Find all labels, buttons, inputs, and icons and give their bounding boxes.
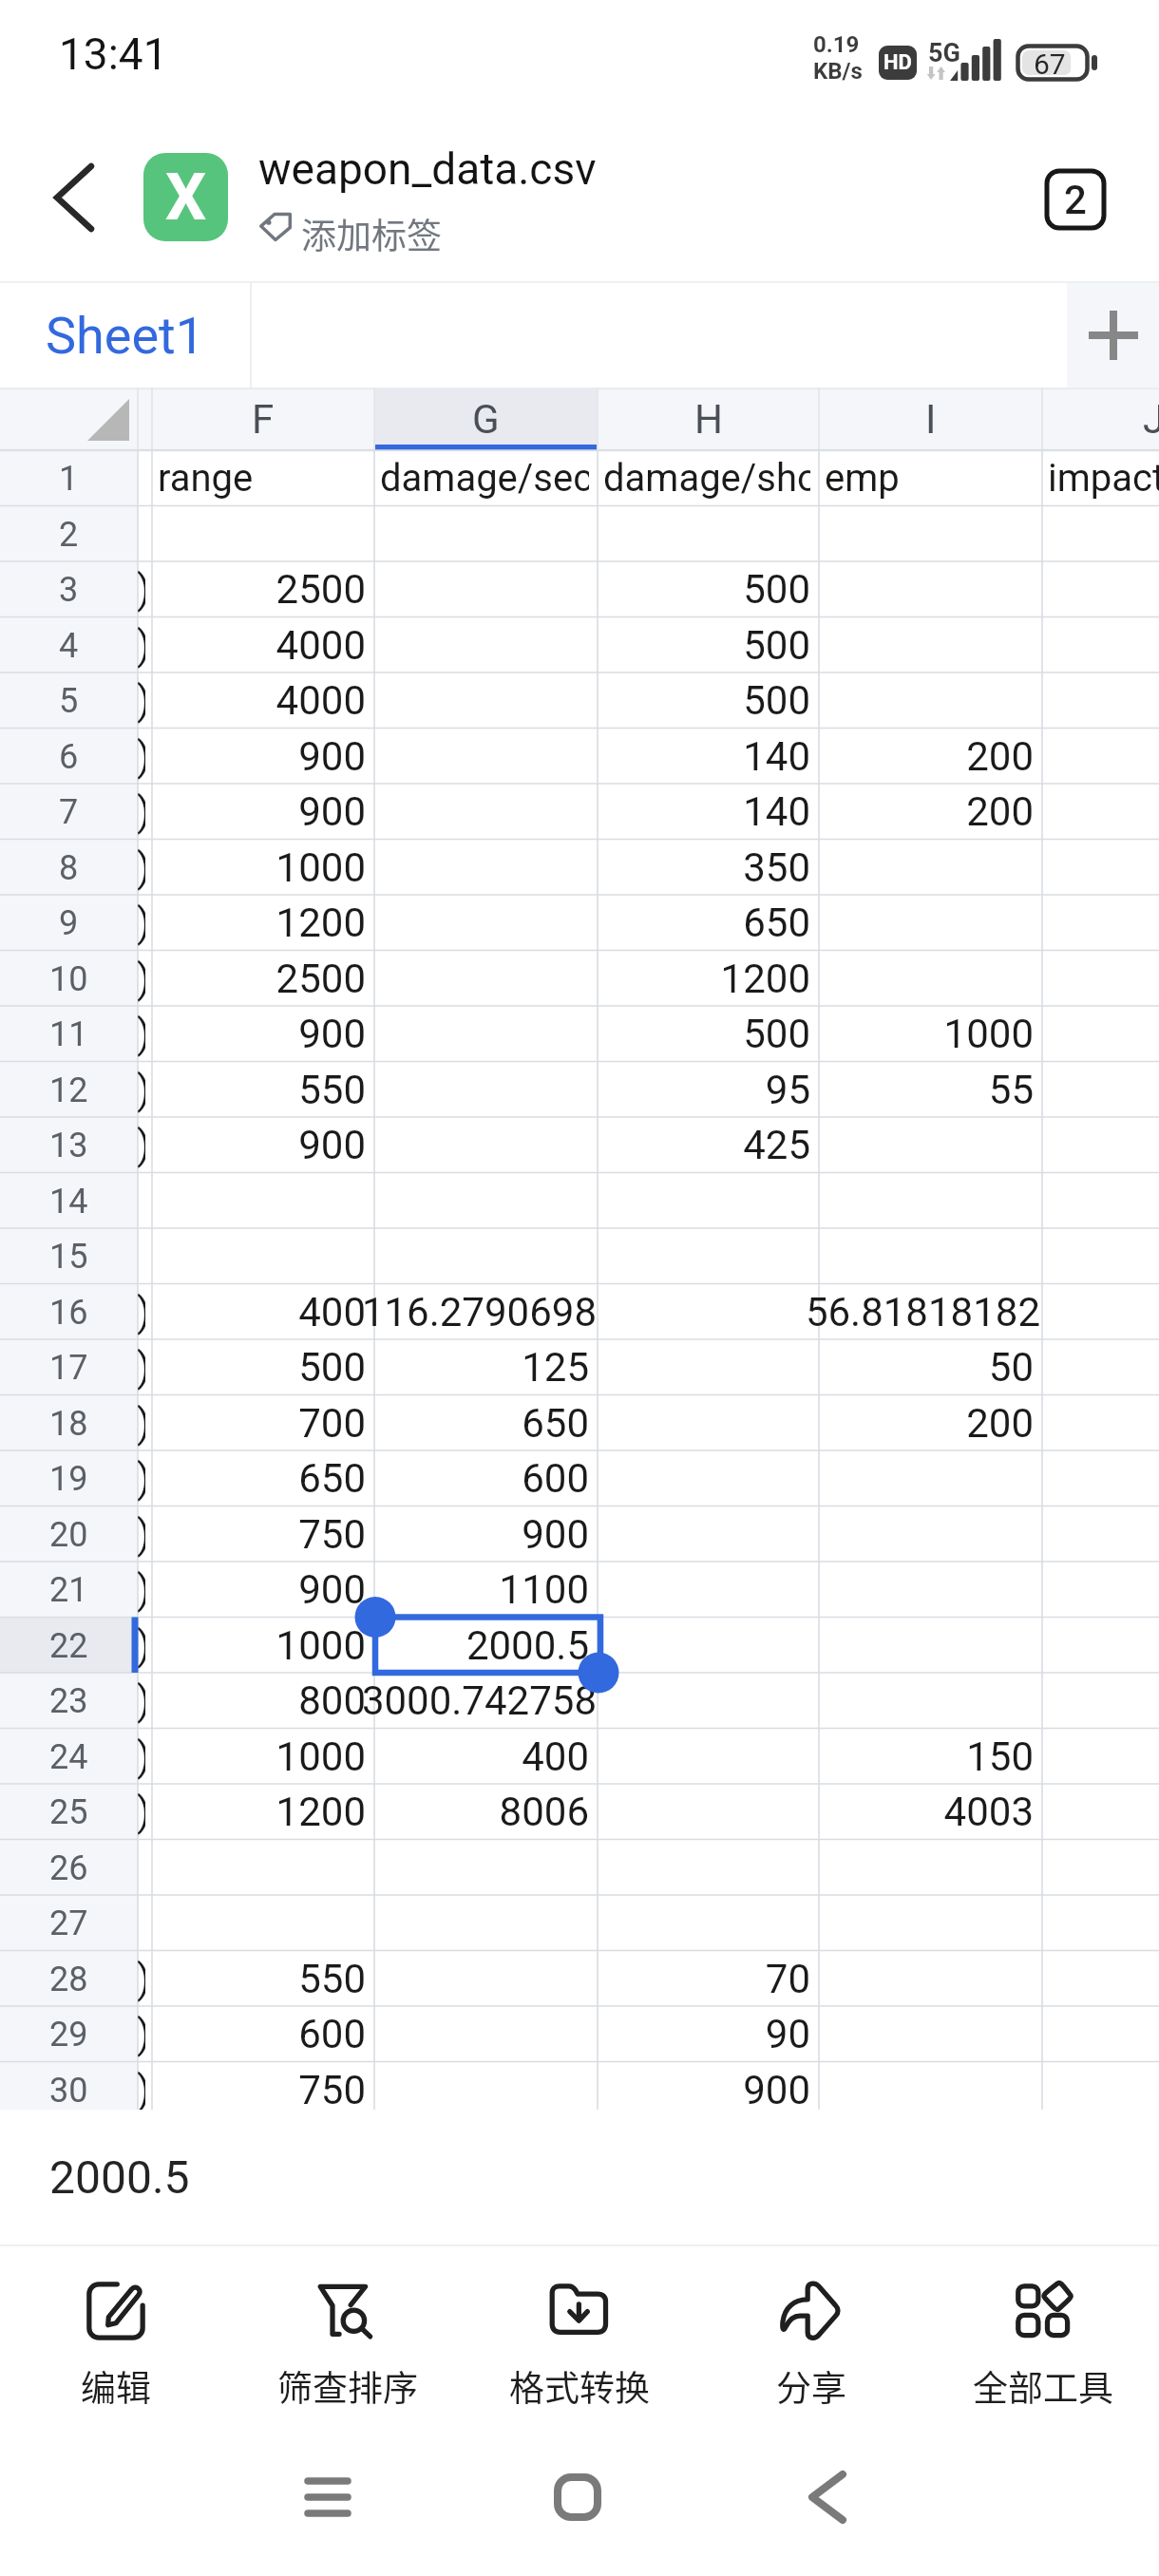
staticText: 3 bbox=[59, 570, 79, 610]
staticText: 29 bbox=[49, 2015, 88, 2055]
staticText: 13:41 bbox=[59, 28, 168, 80]
staticText: 16 bbox=[49, 1293, 88, 1333]
staticText: weapon_data.csv bbox=[258, 143, 597, 195]
staticText: ) bbox=[138, 1566, 145, 1613]
staticText: range bbox=[158, 456, 254, 501]
staticText: 500 bbox=[743, 622, 810, 669]
staticText: 500 bbox=[298, 1344, 366, 1391]
staticText: ) bbox=[138, 677, 145, 724]
staticText: 20 bbox=[49, 1515, 88, 1555]
staticText: 2500 bbox=[275, 566, 366, 613]
staticText: ) bbox=[138, 733, 145, 780]
staticText: ) bbox=[138, 1455, 145, 1502]
staticText: ) bbox=[138, 622, 145, 669]
staticText: 200 bbox=[966, 788, 1034, 835]
staticText: 0.19 bbox=[813, 31, 860, 58]
staticText: 1 bbox=[59, 459, 79, 499]
staticText: ) bbox=[138, 1622, 145, 1669]
staticText: 添加标签 bbox=[301, 208, 442, 259]
staticText: 2000.5 bbox=[465, 1622, 589, 1669]
staticText: ) bbox=[138, 1067, 145, 1113]
staticText: 13 bbox=[49, 1126, 88, 1165]
button[interactable]: Back bbox=[28, 148, 120, 247]
staticText: 5G bbox=[928, 38, 960, 68]
staticText: ) bbox=[138, 2067, 145, 2110]
button[interactable]: 2000.5 bbox=[0, 2110, 1159, 2245]
staticText: 400 bbox=[522, 1733, 589, 1780]
staticText: 550 bbox=[298, 1956, 366, 2002]
staticText: 2 bbox=[59, 515, 79, 555]
staticText: ) bbox=[138, 566, 145, 613]
staticText: 95 bbox=[765, 1067, 810, 1113]
staticText: ) bbox=[138, 1677, 145, 1724]
staticText: 500 bbox=[743, 677, 810, 724]
staticText: 25 bbox=[49, 1792, 88, 1832]
button[interactable]: 筛查排序 bbox=[232, 2246, 464, 2427]
staticText: 600 bbox=[522, 1455, 589, 1502]
staticText: 650 bbox=[298, 1455, 366, 1502]
staticText: 12 bbox=[49, 1070, 88, 1110]
staticText: G bbox=[472, 396, 500, 443]
staticText: 550 bbox=[298, 1067, 366, 1113]
button[interactable]: 编辑 bbox=[0, 2246, 232, 2427]
staticText: 116.2790698 bbox=[361, 1289, 596, 1335]
staticText: 9 bbox=[59, 903, 79, 943]
staticText: 26 bbox=[49, 1848, 88, 1888]
button[interactable]: Add sheet bbox=[1067, 283, 1159, 388]
staticText: 14 bbox=[49, 1182, 88, 1222]
staticText: ) bbox=[138, 1122, 145, 1168]
staticText: ) bbox=[138, 1956, 145, 2002]
staticText: KB/s bbox=[813, 58, 863, 85]
staticText: J bbox=[1143, 396, 1159, 443]
staticText: 55 bbox=[988, 1067, 1034, 1113]
staticText: ) bbox=[138, 1733, 145, 1780]
staticText: 140 bbox=[743, 733, 810, 780]
staticText: 5 bbox=[59, 681, 79, 721]
staticText: 650 bbox=[743, 900, 810, 946]
button[interactable]: Back bbox=[770, 2440, 884, 2554]
button[interactable]: Sheet1 bbox=[0, 283, 251, 388]
staticText: 1200 bbox=[275, 900, 366, 946]
staticText: 1200 bbox=[720, 956, 810, 1002]
staticText: 750 bbox=[298, 1511, 366, 1558]
staticText: ) bbox=[138, 956, 145, 1002]
staticText: 800 bbox=[298, 1677, 366, 1724]
staticText: ) bbox=[138, 788, 145, 835]
staticText: 50 bbox=[988, 1344, 1034, 1391]
staticText: 分享 bbox=[776, 2360, 846, 2412]
button[interactable]: 分享 bbox=[695, 2246, 927, 2427]
button[interactable]: Home bbox=[521, 2440, 635, 2554]
staticText: 1200 bbox=[275, 1789, 366, 1835]
staticText: 150 bbox=[966, 1733, 1034, 1780]
staticText: 11 bbox=[49, 1014, 88, 1054]
button[interactable]: 格式转换 bbox=[464, 2246, 695, 2427]
staticText: 22 bbox=[49, 1626, 88, 1666]
staticText: 27 bbox=[49, 1904, 88, 1943]
staticText: 125 bbox=[522, 1344, 589, 1391]
staticText: 筛查排序 bbox=[277, 2360, 418, 2412]
staticText: 2 bbox=[1064, 177, 1087, 223]
staticText: ) bbox=[138, 1011, 145, 1057]
staticText: 90 bbox=[765, 2011, 810, 2057]
staticText: 900 bbox=[298, 733, 366, 780]
button[interactable]: 全部工具 bbox=[927, 2246, 1159, 2427]
staticText: 30 bbox=[49, 2071, 88, 2110]
button[interactable]: Recent apps bbox=[271, 2440, 385, 2554]
staticText: 1000 bbox=[275, 1733, 366, 1780]
staticText: 19 bbox=[49, 1459, 88, 1499]
staticText: 4000 bbox=[275, 677, 366, 724]
staticText: 6 bbox=[59, 737, 79, 777]
staticText: 500 bbox=[743, 566, 810, 613]
staticText: 900 bbox=[298, 1122, 366, 1168]
button[interactable]: Open tabs bbox=[1045, 169, 1106, 230]
staticText: 1000 bbox=[275, 1622, 366, 1669]
staticText: ) bbox=[138, 1344, 145, 1391]
staticText: HD bbox=[883, 50, 912, 75]
staticText: 56.81818182 bbox=[805, 1289, 1040, 1335]
staticText: 18 bbox=[49, 1404, 88, 1444]
staticText: 2000.5 bbox=[49, 2150, 190, 2204]
staticText: 400 bbox=[298, 1289, 366, 1335]
button[interactable]: Cell G22, 2000.5 bbox=[374, 1618, 598, 1674]
staticText: 23 bbox=[49, 1681, 88, 1721]
staticText: X bbox=[165, 160, 207, 236]
